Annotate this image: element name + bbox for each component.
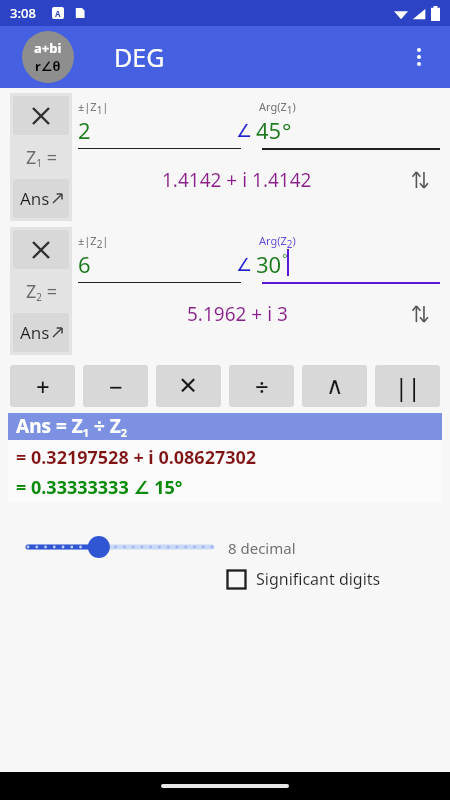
button[interactable]: Significant digits bbox=[226, 568, 381, 590]
staticText: A bbox=[55, 8, 61, 19]
button[interactable]: Insert answer into Z1 bbox=[13, 179, 69, 218]
button[interactable]: ∧ bbox=[302, 365, 367, 407]
staticText: 8 decimal bbox=[228, 538, 296, 558]
staticText: r∠θ bbox=[35, 57, 61, 75]
button[interactable]: + bbox=[10, 365, 75, 407]
staticText: ±|Z2| bbox=[78, 233, 109, 251]
staticText: a+bi bbox=[34, 39, 62, 57]
button[interactable]: 2 bbox=[78, 115, 91, 145]
staticText: + bbox=[36, 370, 50, 403]
staticText: − bbox=[109, 370, 123, 403]
staticText: ∠ bbox=[236, 254, 253, 275]
staticText: = 0.33333333 ∠ 15° bbox=[16, 475, 183, 500]
staticText: 3:08 bbox=[10, 4, 36, 22]
staticText: Ans = Z1 ÷ Z2 bbox=[16, 413, 128, 440]
staticText: ∧ bbox=[326, 372, 344, 400]
button[interactable]: Clear Z2 bbox=[13, 230, 69, 269]
staticText: 30 bbox=[256, 249, 282, 279]
button[interactable]: 45 bbox=[256, 115, 292, 145]
button[interactable]: More options bbox=[398, 36, 440, 78]
staticText: = 0.32197528 + i 0.08627302 bbox=[16, 445, 257, 470]
staticText: ÷ bbox=[255, 370, 269, 403]
button[interactable]: Swap between rectangular and polar bbox=[403, 163, 437, 197]
button[interactable]: DEG bbox=[114, 40, 165, 74]
button[interactable]: Decimal places slider bbox=[18, 532, 222, 562]
staticText: ° bbox=[282, 249, 288, 267]
staticText: ±|Z1| bbox=[78, 99, 109, 117]
button[interactable]: || bbox=[375, 365, 440, 407]
button[interactable]: Insert answer into Z2 bbox=[13, 313, 69, 352]
staticText: Z2 = bbox=[26, 279, 57, 304]
staticText: Significant digits bbox=[256, 568, 381, 590]
button[interactable]: Clear Z1 bbox=[13, 96, 69, 135]
button[interactable]: Ans = Z1 ÷ Z2 bbox=[8, 413, 442, 440]
button[interactable]: 6 bbox=[78, 249, 91, 279]
staticText: ✕ bbox=[178, 372, 199, 400]
button[interactable]: Swap between rectangular and polar bbox=[403, 297, 437, 331]
button[interactable]: Toggle notation a+bi or polar bbox=[22, 31, 74, 83]
staticText: ∠ bbox=[236, 120, 253, 141]
staticText: Arg(Z2) bbox=[259, 233, 296, 251]
staticText: 5.1962 + i 3 bbox=[187, 301, 288, 327]
staticText: Z1 = bbox=[26, 145, 57, 170]
staticText: 45 bbox=[256, 115, 282, 145]
button[interactable]: ÷ bbox=[229, 365, 294, 407]
staticText: Arg(Z1) bbox=[259, 99, 296, 117]
staticText: 1.4142 + i 1.4142 bbox=[162, 167, 312, 193]
staticText: Ans bbox=[20, 321, 50, 344]
staticText: || bbox=[395, 371, 421, 402]
button[interactable]: − bbox=[83, 365, 148, 407]
button[interactable]: 30 bbox=[256, 249, 288, 279]
staticText: ° bbox=[282, 115, 292, 145]
staticText: Ans bbox=[20, 187, 50, 210]
button[interactable]: ✕ bbox=[156, 365, 221, 407]
